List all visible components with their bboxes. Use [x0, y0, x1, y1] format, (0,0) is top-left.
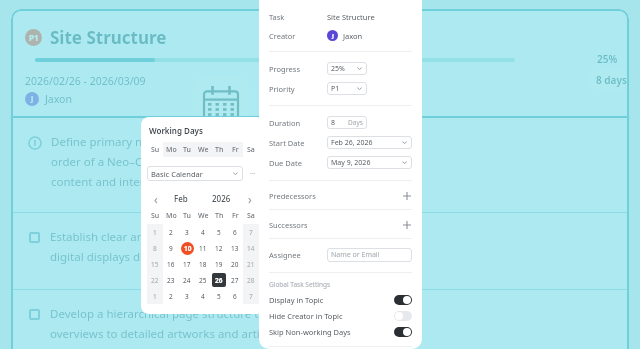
button[interactable]: Successors [269, 219, 412, 230]
staticText: Feb 26, 2026 [331, 138, 373, 148]
button[interactable]: Fr [227, 142, 243, 157]
button[interactable]: Sa [243, 142, 259, 157]
staticText: Name or Email [331, 250, 380, 260]
staticText: 2 [169, 228, 173, 237]
staticText: Develop a hierarchical page structure th… [50, 306, 394, 322]
button[interactable]: Name or Email [327, 248, 412, 262]
button[interactable]: We [195, 142, 211, 157]
button[interactable]: 11 [195, 240, 211, 256]
button[interactable]: More calendar options [247, 168, 259, 180]
button[interactable]: Mo [163, 142, 179, 157]
staticText: ··· [250, 169, 256, 179]
button[interactable]: Su [147, 142, 163, 157]
button[interactable]: 8 [327, 116, 367, 129]
button[interactable]: 25 [195, 272, 211, 288]
staticText: 23 [167, 276, 175, 285]
staticText: Sa [247, 145, 255, 155]
other: Add Predecessors [401, 190, 412, 201]
staticText: › [248, 191, 252, 205]
staticText: Duration [269, 118, 301, 128]
staticText: P1 [331, 84, 340, 94]
button[interactable]: P1 [327, 82, 367, 95]
button[interactable]: 3 [179, 224, 195, 240]
button[interactable]: 4 [195, 288, 211, 304]
staticText: 8 [153, 244, 157, 253]
button[interactable]: 7 [243, 288, 259, 304]
staticText: Display in Topic [269, 295, 324, 305]
button[interactable]: 24 [179, 272, 195, 288]
button[interactable]: 12 [211, 240, 227, 256]
button[interactable]: 8 [147, 240, 163, 256]
button[interactable]: 13 [227, 240, 243, 256]
button[interactable]: 25% [327, 62, 367, 75]
button[interactable]: 1 [147, 224, 163, 240]
button[interactable]: Previous month [149, 191, 163, 205]
staticText: We [198, 211, 209, 221]
other: Add Successors [401, 219, 412, 230]
button[interactable]: 2 [163, 224, 179, 240]
button[interactable]: 19 [211, 256, 227, 272]
button[interactable]: 6 [227, 288, 243, 304]
button[interactable]: 16 [163, 256, 179, 272]
staticText: 17 [183, 260, 191, 269]
staticText: 15 [151, 260, 159, 269]
staticText: Define primary navigation items into two… [51, 134, 361, 150]
staticText: 27 [231, 276, 239, 285]
button[interactable]: Feb 26, 2026 [327, 136, 412, 149]
button[interactable]: 6 [227, 224, 243, 240]
button[interactable]: 3 [179, 288, 195, 304]
button[interactable]: 26 [211, 272, 227, 288]
staticText: 1 [153, 228, 157, 237]
staticText: 13 [231, 244, 239, 253]
button[interactable]: 21 [243, 256, 259, 272]
staticText: P1 [29, 32, 39, 43]
staticText: Global Task Settings [269, 280, 331, 289]
button[interactable]: Th [211, 142, 227, 157]
button[interactable]: Basic Calendar [147, 166, 243, 181]
button[interactable]: 5 [211, 288, 227, 304]
staticText: 25% [331, 64, 345, 74]
staticText: Sa [247, 211, 255, 221]
button[interactable]: 28 [243, 272, 259, 288]
button[interactable]: 15 [147, 256, 163, 272]
staticText: 5 [217, 228, 221, 237]
button[interactable]: 18 [195, 256, 211, 272]
staticText: ‹ [154, 191, 158, 205]
staticText: order of a Neo–Classical information arc… [51, 154, 382, 170]
staticText: Creator [269, 31, 296, 41]
button[interactable]: Hide Creator in Topic [269, 311, 412, 321]
staticText: Hide Creator in Topic [269, 311, 343, 321]
button[interactable]: 20 [227, 256, 243, 272]
button[interactable]: 7 [243, 224, 259, 240]
button[interactable]: Establish clear and legible labels and i… [11, 213, 629, 289]
button[interactable]: 1 [147, 288, 163, 304]
button[interactable]: 14 [243, 240, 259, 256]
button[interactable]: Develop a hierarchical page structure th… [11, 290, 629, 349]
button[interactable]: 2 [163, 288, 179, 304]
staticText: J [31, 94, 34, 104]
button[interactable]: 22 [147, 272, 163, 288]
button[interactable]: Display in Topic [269, 295, 412, 305]
button[interactable]: May 9, 2026 [327, 156, 412, 169]
button[interactable]: Predecessors [269, 190, 412, 201]
staticText: 25% [597, 52, 618, 66]
staticText: 18 [199, 260, 207, 269]
button[interactable]: 23 [163, 272, 179, 288]
button[interactable]: 17 [179, 256, 195, 272]
button[interactable]: 27 [227, 272, 243, 288]
button[interactable]: Next month [243, 191, 257, 205]
staticText: Priority [269, 84, 295, 94]
staticText: 12 [215, 244, 223, 253]
staticText: 20 [231, 260, 239, 269]
button[interactable]: Define primary navigation items into two… [11, 118, 629, 212]
staticText: 4 [201, 292, 205, 301]
staticText: Th [215, 211, 224, 221]
button[interactable]: 9 [163, 240, 179, 256]
button[interactable]: 4 [195, 224, 211, 240]
staticText: overviews to detailed artworks and artis… [50, 326, 340, 342]
button[interactable]: 5 [211, 224, 227, 240]
staticText: Working Days [149, 125, 203, 136]
button[interactable]: 10 [179, 240, 195, 256]
button[interactable]: Skip Non-working Days [269, 327, 412, 337]
button[interactable]: Tu [179, 142, 195, 157]
